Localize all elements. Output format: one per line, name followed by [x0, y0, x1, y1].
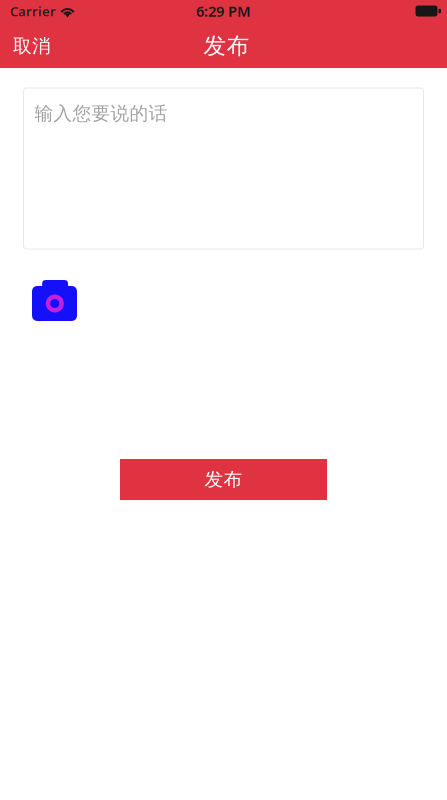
staticText: 发布	[203, 32, 249, 60]
staticText: 6:29 PM	[196, 1, 251, 21]
staticText: 取消	[13, 34, 51, 57]
button[interactable]: 取消	[0, 24, 65, 68]
button[interactable]: Add photo	[28, 276, 81, 325]
button[interactable]: 发布	[120, 459, 327, 500]
button[interactable]: 输入您要说的话	[23, 88, 423, 249]
staticText: 发布	[204, 468, 242, 491]
staticText: Carrier	[10, 2, 56, 20]
staticText: 输入您要说的话	[34, 102, 167, 125]
